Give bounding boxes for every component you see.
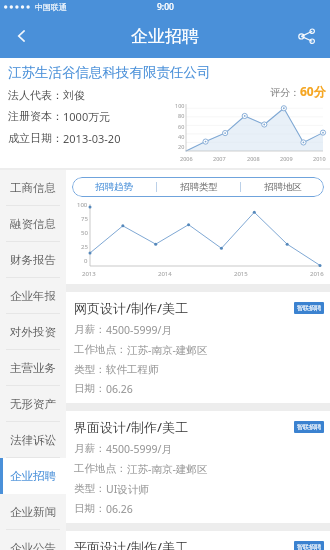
staticText: 招聘类型 xyxy=(180,181,218,193)
staticText: 融资信息 xyxy=(10,217,56,231)
staticText: 刘俊 xyxy=(63,88,85,102)
staticText: 企业公告 xyxy=(10,541,56,550)
staticText: 日期： xyxy=(74,502,106,515)
staticText: 企业年报 xyxy=(10,289,56,303)
button[interactable]: 主营业务 xyxy=(0,350,66,386)
staticText: 财务报告 xyxy=(10,253,56,267)
staticText: 4500-5999/月 xyxy=(106,442,172,456)
button[interactable]: 对外投资 xyxy=(0,314,66,350)
staticText: 企业招聘 xyxy=(10,469,56,483)
staticText: 1000万元 xyxy=(63,109,111,124)
button[interactable]: 无形资产 xyxy=(0,386,66,422)
button[interactable]: 招聘地区 xyxy=(241,177,324,197)
staticText: 企业招聘 xyxy=(131,26,199,47)
staticText: 日期： xyxy=(74,382,106,395)
staticText: 20 xyxy=(178,143,185,150)
staticText: 60 xyxy=(178,123,185,130)
staticText: 0 xyxy=(84,257,88,265)
button[interactable]: 工商信息 xyxy=(0,170,66,206)
staticText: 80 xyxy=(178,112,185,119)
button[interactable]: 企业年报 xyxy=(0,278,66,314)
button[interactable]: 界面设计/制作/美工 xyxy=(66,411,330,523)
staticText: 主营业务 xyxy=(10,361,56,375)
staticText: 对外投资 xyxy=(10,325,56,339)
staticText: 招聘趋势 xyxy=(95,181,133,193)
staticText: 2008 xyxy=(247,155,260,162)
button[interactable]: 企业招聘 xyxy=(0,458,66,494)
staticText: 2006 xyxy=(180,155,193,162)
staticText: 2010 xyxy=(313,155,326,162)
button[interactable]: 企业新闻 xyxy=(0,494,66,530)
staticText: 平面设计/制作/美工 xyxy=(74,538,189,550)
staticText: 软件工程师 xyxy=(106,363,159,376)
staticText: 类型： xyxy=(74,482,106,495)
staticText: 法人代表： xyxy=(8,88,63,102)
staticText: 9:00 xyxy=(157,1,174,13)
button[interactable]: Share xyxy=(284,14,330,58)
staticText: 100 xyxy=(77,201,88,209)
staticText: 2015 xyxy=(234,270,248,278)
staticText: 中国联通 xyxy=(35,2,67,12)
staticText: 智联招聘 xyxy=(297,543,321,550)
button[interactable]: 法律诉讼 xyxy=(0,422,66,458)
staticText: 2013 xyxy=(82,270,96,278)
staticText: 江苏生活谷信息科技有限责任公司 xyxy=(8,64,211,81)
staticText: 无形资产 xyxy=(10,397,56,411)
staticText: 40 xyxy=(178,133,185,140)
staticText: UI设计师 xyxy=(106,482,149,496)
staticText: 工商信息 xyxy=(10,181,56,195)
staticText: 2007 xyxy=(213,155,226,162)
button[interactable]: 招聘趋势 xyxy=(72,177,156,197)
staticText: 60分 xyxy=(300,83,326,99)
staticText: 智联招聘 xyxy=(297,304,321,312)
staticText: 06.26 xyxy=(106,382,133,396)
staticText: 成立日期： xyxy=(8,131,63,145)
button[interactable]: 企业公告 xyxy=(0,530,66,550)
staticText: 25 xyxy=(81,243,88,251)
button[interactable]: 网页设计/制作/美工 xyxy=(66,292,330,403)
staticText: 2009 xyxy=(280,155,293,162)
staticText: 06.26 xyxy=(106,502,133,516)
staticText: 招聘地区 xyxy=(264,181,302,193)
staticText: 2014 xyxy=(158,270,172,278)
staticText: 江苏-南京-建邺区 xyxy=(127,343,208,357)
staticText: 评分： xyxy=(270,86,300,99)
staticText: 企业新闻 xyxy=(10,505,56,519)
button[interactable]: 融资信息 xyxy=(0,206,66,242)
staticText: 工作地点： xyxy=(74,462,127,475)
staticText: 界面设计/制作/美工 xyxy=(74,418,189,436)
staticText: 50 xyxy=(81,229,88,237)
staticText: 法律诉讼 xyxy=(10,433,56,447)
staticText: 100 xyxy=(175,102,185,109)
button[interactable]: 财务报告 xyxy=(0,242,66,278)
staticText: 月薪： xyxy=(74,442,106,455)
button[interactable]: 招聘类型 xyxy=(157,177,240,197)
staticText: 2016 xyxy=(310,270,324,278)
staticText: 工作地点： xyxy=(74,343,127,356)
staticText: 75 xyxy=(81,215,88,223)
staticText: 智联招聘 xyxy=(297,423,321,431)
staticText: 类型： xyxy=(74,363,106,376)
staticText: 4500-5999/月 xyxy=(106,323,172,337)
staticText: 月薪： xyxy=(74,323,106,336)
staticText: 2013-03-20 xyxy=(63,131,121,146)
staticText: 网页设计/制作/美工 xyxy=(74,299,189,317)
button[interactable]: Back xyxy=(0,14,44,58)
staticText: 江苏-南京-建邺区 xyxy=(127,462,208,476)
staticText: 注册资本： xyxy=(8,109,63,123)
button[interactable]: 平面设计/制作/美工 xyxy=(66,531,330,550)
